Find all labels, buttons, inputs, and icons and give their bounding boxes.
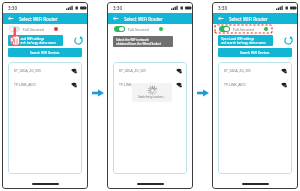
- staticText: Switching socket...: [138, 95, 166, 99]
- other: Next step: [92, 89, 104, 97]
- staticText: obtained from the Wired Socket: [116, 42, 161, 46]
- staticText: KT_GIGA_2G_505: [14, 68, 41, 73]
- button[interactable]: Search WiFi Devices: [218, 48, 292, 57]
- other: Next step: [197, 89, 209, 97]
- staticText: 3:30: [218, 5, 227, 11]
- staticText: and search for/copy device name: [11, 41, 56, 45]
- button[interactable]: TP-LINK_AECC: [119, 80, 182, 89]
- staticText: Select WiFi Router: [229, 16, 268, 22]
- staticText: 3:30: [113, 5, 122, 11]
- staticText: Select WiFi Router: [19, 16, 58, 22]
- button[interactable]: Refresh: [282, 34, 294, 46]
- button[interactable]: KT_GIGA_2G_505: [119, 66, 182, 75]
- staticText: TP-LINK_AECC: [224, 82, 247, 87]
- button[interactable]: Open Local WiFi settings: [218, 35, 273, 46]
- staticText: TP-LINK_AECC: [119, 82, 142, 87]
- button[interactable]: TP-LINK_AECC: [224, 80, 287, 89]
- button[interactable]: TP-LINK_AECC: [14, 80, 77, 89]
- button[interactable]: Full-Secured toggle: [9, 26, 20, 32]
- staticText: Select WiFi Router: [124, 16, 163, 22]
- staticText: Full-Secured: [23, 27, 44, 32]
- staticText: Full-Secured: [128, 27, 149, 32]
- staticText: Search WiFi Devices: [240, 51, 270, 55]
- staticText: and search for/copy device name: [221, 41, 266, 45]
- staticText: 3:30: [8, 5, 17, 11]
- button[interactable]: KT_GIGA_2G_505: [224, 66, 287, 75]
- button[interactable]: Back: [7, 15, 14, 22]
- staticText: Full-Secured: [233, 27, 254, 32]
- button[interactable]: Back: [217, 15, 224, 22]
- staticText: KT_GIGA_2G_505: [119, 68, 146, 73]
- button[interactable]: KT_GIGA_2G_505: [14, 66, 77, 75]
- staticText: Search WiFi Devices: [30, 51, 60, 55]
- staticText: KT_GIGA_2G_505: [224, 68, 251, 73]
- button[interactable]: Full-Secured toggle: [219, 26, 230, 32]
- staticText: Open Local WiFi settings: [221, 37, 255, 41]
- button[interactable]: Search WiFi Devices: [8, 48, 82, 57]
- button[interactable]: Back: [112, 15, 119, 22]
- button[interactable]: Refresh: [72, 34, 84, 46]
- staticText: TP-LINK_AECC: [14, 82, 37, 87]
- staticText: Open Local WiFi settings: [11, 37, 45, 41]
- button[interactable]: Full-Secured toggle: [114, 26, 125, 32]
- button[interactable]: Open Local WiFi settings: [8, 35, 63, 46]
- staticText: Select the WiFi network: [116, 38, 149, 42]
